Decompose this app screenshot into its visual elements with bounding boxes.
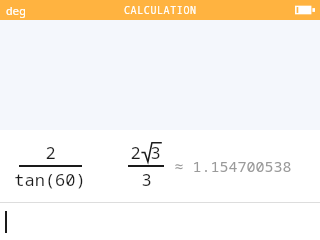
button[interactable]: Battery xyxy=(295,4,315,16)
button[interactable]: Expression input xyxy=(0,203,320,240)
staticText: 2 xyxy=(130,141,141,164)
button[interactable]: deg xyxy=(6,3,26,18)
staticText: CALCULATION xyxy=(124,3,197,17)
staticText: 3 xyxy=(141,168,152,191)
staticText: 2 xyxy=(45,141,56,164)
button[interactable]: 2 xyxy=(0,130,320,202)
staticText: ≈ 1.154700538 xyxy=(174,156,292,176)
staticText: 3 xyxy=(150,141,161,164)
staticText: tan(60) xyxy=(14,168,86,191)
